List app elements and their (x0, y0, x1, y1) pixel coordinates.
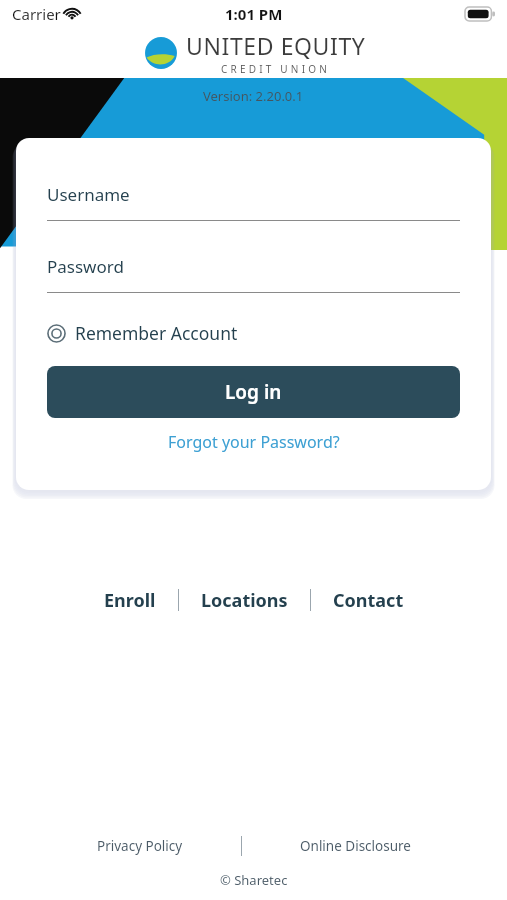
button[interactable]: Contact (311, 582, 426, 619)
button[interactable]: Username (47, 183, 460, 221)
staticText: Locations (201, 588, 288, 613)
button[interactable]: Online Disclosure (290, 832, 421, 860)
button[interactable]: Privacy Policy (87, 832, 193, 860)
staticText: Remember Account (75, 321, 238, 345)
staticText: Forgot your Password? (168, 431, 340, 453)
staticText: Log in (225, 379, 282, 405)
button[interactable]: Password (47, 255, 460, 293)
staticText: UNITED EQUITY (186, 30, 366, 61)
staticText: Contact (333, 588, 404, 613)
staticText: Version: 2.20.0.1 (203, 87, 304, 105)
staticText: Enroll (104, 588, 156, 613)
staticText: 1:01 PM (225, 4, 283, 24)
button[interactable]: Locations (179, 582, 310, 619)
button[interactable]: Forgot your Password? (47, 431, 460, 453)
button[interactable]: Log in (47, 366, 460, 418)
staticText: Username (47, 183, 130, 206)
staticText: Password (47, 255, 124, 278)
button[interactable]: Remember Account (47, 317, 238, 349)
staticText: Online Disclosure (300, 837, 411, 855)
staticText: Carrier (12, 4, 61, 24)
staticText: Privacy Policy (97, 837, 183, 855)
button[interactable]: Enroll (82, 582, 178, 619)
staticText: © Sharetec (220, 871, 288, 889)
staticText: CREDIT UNION (221, 62, 331, 76)
